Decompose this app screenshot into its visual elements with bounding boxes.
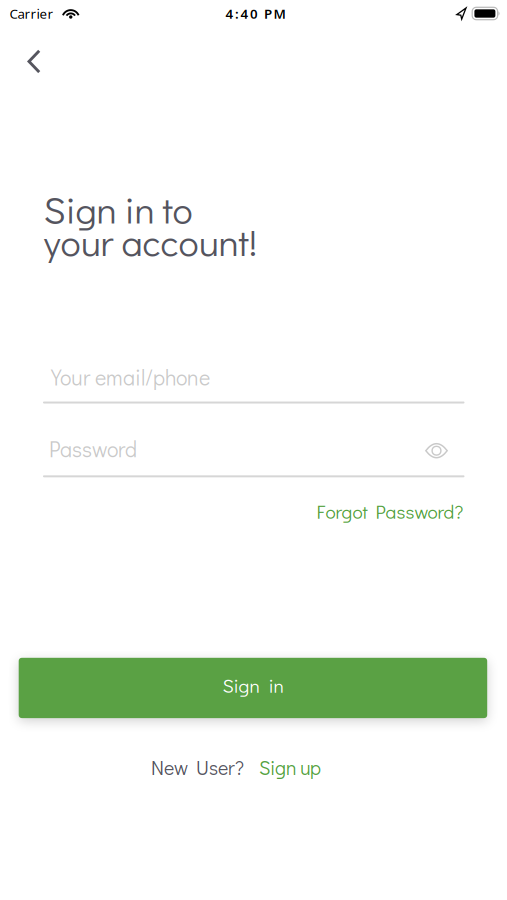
staticText: your account!: [43, 216, 257, 266]
staticText: 4:40 PM: [225, 5, 285, 22]
button[interactable]: Sign: [19, 658, 487, 718]
button[interactable]: Back: [18, 40, 50, 83]
staticText: Password: [49, 435, 137, 463]
staticText: Sign: [222, 673, 259, 698]
staticText: Sign up: [259, 755, 321, 780]
staticText: Your email/phone: [51, 363, 210, 391]
staticText: in: [268, 673, 283, 698]
button[interactable]: Sign up: [259, 755, 321, 780]
button[interactable]: Password: [43, 435, 464, 477]
button[interactable]: Forgot Password?: [316, 499, 463, 524]
staticText: New: [151, 755, 188, 780]
staticText: User?: [196, 755, 244, 780]
button[interactable]: Show password: [419, 436, 454, 465]
staticText: Carrier: [9, 5, 53, 22]
button[interactable]: Your email/phone: [43, 363, 464, 403]
staticText: Forgot Password?: [316, 499, 463, 524]
staticText: Sign in to: [43, 184, 192, 233]
